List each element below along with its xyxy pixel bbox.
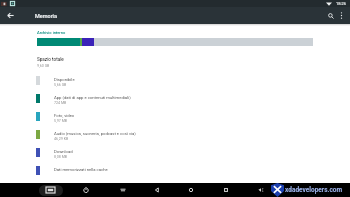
staticText: xdadevelopers.com (285, 186, 343, 194)
button[interactable]: Recents (219, 183, 233, 197)
button[interactable]: Back (0, 7, 20, 24)
staticText: 18:26 (336, 1, 346, 6)
staticText: 8,08 MB (54, 155, 68, 159)
button[interactable]: Disponibile (36, 71, 330, 89)
button[interactable]: App (dati di app e contenuti multimedial… (36, 89, 330, 107)
staticText: Spazio totale (37, 57, 64, 62)
button[interactable]: Audio (musica, suoneria, podcast e così … (36, 125, 330, 143)
button[interactable]: Foto, video (36, 107, 330, 125)
staticText: 5,97 MB (54, 119, 68, 123)
staticText: 5,66 GB (54, 83, 67, 87)
staticText: Dati memorizzati nella cache (54, 167, 108, 172)
staticText: 46,29 KB (54, 137, 69, 141)
staticText: App (dati di app e contenuti multimedial… (54, 95, 131, 100)
staticText: 9,60 GB (37, 64, 50, 68)
button[interactable]: Download (36, 143, 330, 161)
button[interactable]: Input method (116, 183, 130, 197)
staticText: Audio (musica, suoneria, podcast e così … (54, 131, 136, 136)
button[interactable]: Power (79, 183, 93, 197)
button[interactable]: Home (184, 183, 198, 197)
staticText: Foto, video (54, 113, 75, 118)
button[interactable]: Back (150, 183, 164, 197)
staticText: Disponibile (54, 77, 75, 82)
staticText: Archivio interno (37, 30, 66, 35)
staticText: 724 MB (54, 101, 67, 105)
button[interactable]: Dati memorizzati nella cache (36, 161, 330, 179)
button[interactable]: More options (334, 7, 349, 24)
staticText: Download (54, 149, 73, 154)
button[interactable]: Screenshot (38, 183, 63, 197)
button[interactable]: Search (322, 7, 339, 24)
button[interactable]: Volume (254, 183, 268, 197)
staticText: Memoria (35, 13, 57, 19)
